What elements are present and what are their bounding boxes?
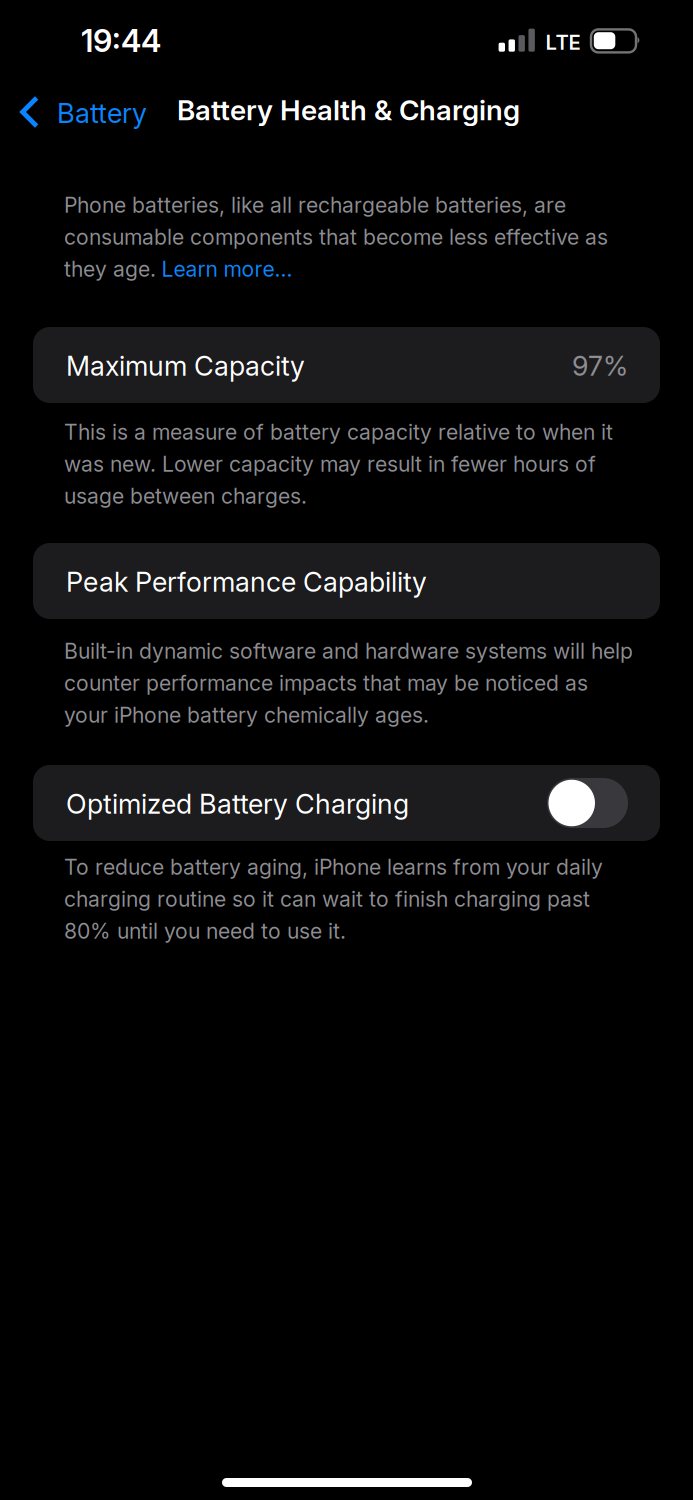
staticText: Battery (57, 96, 147, 130)
staticText: charging routine so it can wait to finis… (64, 886, 590, 912)
staticText: Peak Performance Capability (66, 566, 427, 598)
staticText: was new. Lower capacity may result in fe… (64, 451, 596, 477)
staticText: Built-in dynamic software and hardware s… (64, 638, 633, 664)
staticText: To reduce battery aging, iPhone learns f… (64, 854, 603, 880)
button[interactable]: Maximum Capacity (33, 327, 660, 403)
button[interactable]: Optimized Battery Charging (33, 765, 660, 841)
button[interactable]: Peak Performance Capability (33, 543, 660, 619)
staticText: consumable components that become less e… (64, 224, 608, 250)
staticText: they age. (64, 256, 156, 282)
staticText: 19:44 (81, 22, 161, 60)
staticText: 80% until you need to use it. (64, 918, 346, 944)
staticText: Battery Health & Charging (177, 93, 520, 127)
staticText: This is a measure of battery capacity re… (64, 419, 613, 445)
staticText: Maximum Capacity (66, 350, 305, 382)
staticText: counter performance impacts that may be … (64, 670, 588, 696)
button[interactable]: Battery (20, 80, 161, 144)
staticText: your iPhone battery chemically ages. (64, 702, 429, 728)
staticText: Optimized Battery Charging (66, 788, 409, 820)
staticText: LTE (545, 30, 580, 55)
staticText: 97% (572, 350, 628, 382)
button[interactable]: Learn more... (161, 256, 292, 282)
staticText: Phone batteries, like all rechargeable b… (64, 192, 566, 218)
staticText: Learn more... (161, 256, 292, 282)
staticText: usage between charges. (64, 483, 307, 509)
